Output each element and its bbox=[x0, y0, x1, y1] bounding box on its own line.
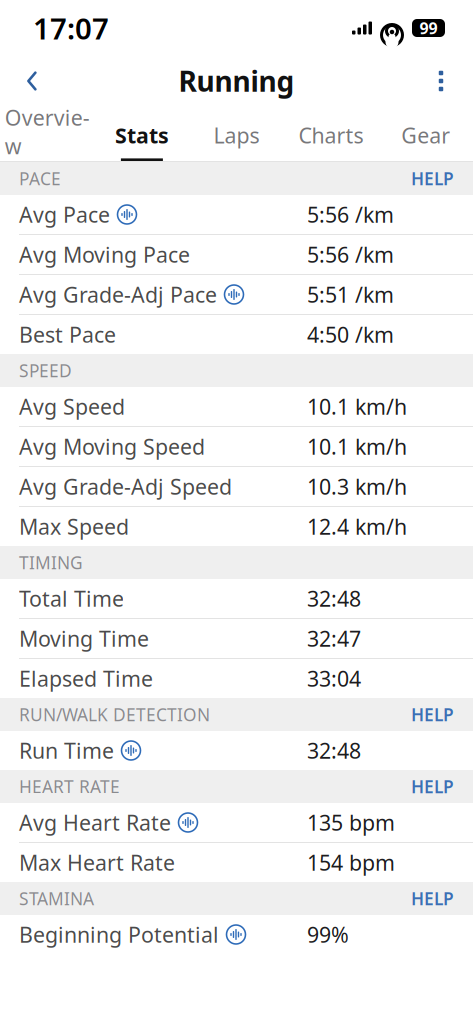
staticText: Gear bbox=[401, 121, 450, 149]
staticText: 10.1 km/h bbox=[307, 432, 407, 461]
staticText: Max Speed bbox=[19, 512, 129, 541]
staticText: 32:47 bbox=[307, 624, 361, 653]
staticText: Charts bbox=[299, 121, 364, 149]
button[interactable]: HELP bbox=[405, 769, 460, 804]
staticText: Avg Speed bbox=[19, 392, 125, 421]
staticText: 33:04 bbox=[307, 664, 361, 693]
staticText: HELP bbox=[411, 775, 454, 798]
staticText: Avg Pace bbox=[19, 200, 110, 229]
staticText: 12.4 km/h bbox=[307, 512, 407, 541]
staticText: Run Time bbox=[19, 736, 114, 765]
staticText: Max Heart Rate bbox=[19, 848, 175, 877]
staticText: Total Time bbox=[19, 584, 124, 613]
button[interactable]: Gear bbox=[378, 106, 473, 161]
staticText: 135 bpm bbox=[307, 808, 395, 837]
button[interactable]: HELP bbox=[405, 697, 460, 732]
staticText: PACE bbox=[19, 167, 61, 190]
staticText: Overview bbox=[5, 103, 90, 160]
staticText: HEART RATE bbox=[19, 775, 120, 798]
staticText: 154 bpm bbox=[307, 848, 395, 877]
staticText: 4:50 /km bbox=[307, 320, 394, 349]
staticText: 17:07 bbox=[33, 8, 109, 47]
staticText: HELP bbox=[411, 703, 454, 726]
button[interactable]: HELP bbox=[405, 881, 460, 916]
staticText: Best Pace bbox=[19, 320, 116, 349]
staticText: STAMINA bbox=[19, 887, 94, 910]
staticText: 32:48 bbox=[307, 584, 361, 613]
staticText: 32:48 bbox=[307, 736, 361, 765]
staticText: Stats bbox=[115, 121, 169, 149]
staticText: RUN/WALK DETECTION bbox=[19, 703, 210, 726]
staticText: Avg Moving Pace bbox=[19, 240, 190, 269]
staticText: 10.1 km/h bbox=[307, 392, 407, 421]
staticText: 5:51 /km bbox=[307, 280, 394, 309]
staticText: Running bbox=[178, 62, 294, 100]
staticText: Avg Grade-Adj Speed bbox=[19, 472, 232, 501]
staticText: HELP bbox=[411, 167, 454, 190]
button[interactable]: Laps bbox=[189, 106, 284, 161]
button[interactable]: Back bbox=[6, 57, 58, 105]
staticText: 99 bbox=[419, 17, 437, 39]
staticText: 5:56 /km bbox=[307, 240, 394, 269]
staticText: Avg Moving Speed bbox=[19, 432, 205, 461]
staticText: TIMING bbox=[19, 551, 83, 574]
button[interactable]: HELP bbox=[405, 161, 460, 196]
staticText: Avg Heart Rate bbox=[19, 808, 171, 837]
staticText: HELP bbox=[411, 887, 454, 910]
staticText: 10.3 km/h bbox=[307, 472, 407, 501]
button[interactable]: Overview bbox=[0, 106, 95, 161]
staticText: Laps bbox=[213, 121, 259, 149]
button[interactable]: Charts bbox=[284, 106, 378, 161]
button[interactable]: More options bbox=[415, 57, 467, 105]
button[interactable]: Stats bbox=[95, 106, 189, 161]
staticText: 99% bbox=[307, 920, 349, 949]
staticText: Elapsed Time bbox=[19, 664, 153, 693]
staticText: Moving Time bbox=[19, 624, 149, 653]
staticText: Beginning Potential bbox=[19, 920, 219, 949]
staticText: 5:56 /km bbox=[307, 200, 394, 229]
staticText: SPEED bbox=[19, 359, 72, 382]
staticText: Avg Grade-Adj Pace bbox=[19, 280, 217, 309]
